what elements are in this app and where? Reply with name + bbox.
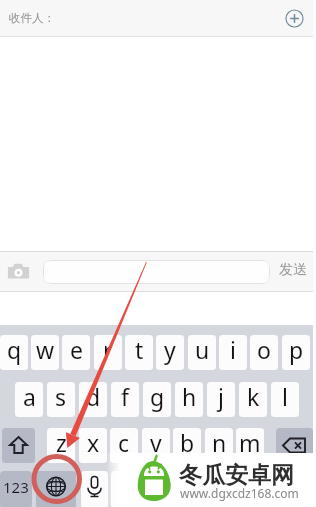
staticText: l <box>282 382 288 412</box>
staticText: s <box>55 382 67 412</box>
staticText: b <box>180 428 195 458</box>
button[interactable]: 123 <box>0 471 32 507</box>
button[interactable]: q <box>0 335 28 370</box>
staticText: d <box>86 382 101 412</box>
button[interactable]: t <box>125 335 153 370</box>
button[interactable]: e <box>62 335 90 370</box>
staticText: z <box>56 428 67 458</box>
staticText: w <box>36 335 55 365</box>
button[interactable]: Switch keyboard <box>36 471 76 507</box>
button[interactable]: 换行 <box>257 471 313 507</box>
button[interactable]: d <box>79 382 107 417</box>
button[interactable]: g <box>143 382 171 417</box>
button[interactable]: n <box>205 428 233 463</box>
button[interactable]: w <box>31 335 59 370</box>
staticText: h <box>182 382 197 412</box>
staticText: g <box>150 382 165 412</box>
staticText: r <box>103 335 113 365</box>
staticText: f <box>121 382 129 412</box>
staticText: a <box>23 382 36 412</box>
staticText: u <box>195 335 210 365</box>
button[interactable]: c <box>110 428 138 463</box>
staticText: y <box>164 335 176 365</box>
button[interactable]: f <box>111 382 139 417</box>
button[interactable]: l <box>271 382 299 417</box>
staticText: p <box>289 335 304 365</box>
button[interactable]: y <box>156 335 184 370</box>
staticText: n <box>212 428 227 458</box>
staticText: q <box>7 335 22 365</box>
staticText: www.dgxcdz168.com <box>180 485 299 501</box>
button[interactable] <box>111 471 253 507</box>
staticText: 收件人： <box>9 11 55 25</box>
staticText: m <box>239 428 261 458</box>
staticText: j <box>218 382 224 412</box>
staticText: c <box>118 428 130 458</box>
staticText: 换行 <box>272 479 298 495</box>
button[interactable]: m <box>236 428 264 463</box>
button[interactable]: s <box>47 382 75 417</box>
button[interactable]: Dictate <box>81 471 108 507</box>
button[interactable]: Shift <box>2 428 35 463</box>
button[interactable] <box>43 260 270 284</box>
button[interactable]: 发送 <box>276 258 310 282</box>
button[interactable]: o <box>250 335 278 370</box>
button[interactable]: i <box>219 335 247 370</box>
button[interactable]: p <box>282 335 310 370</box>
staticText: e <box>70 335 83 365</box>
button[interactable]: h <box>175 382 203 417</box>
staticText: i <box>230 335 236 365</box>
staticText: t <box>135 335 144 365</box>
button[interactable]: a <box>15 382 43 417</box>
button[interactable]: b <box>173 428 201 463</box>
button[interactable]: z <box>47 428 75 463</box>
button[interactable]: Camera <box>7 260 30 283</box>
button[interactable]: u <box>188 335 216 370</box>
button[interactable]: Backspace <box>276 428 313 463</box>
button[interactable]: Add recipient <box>285 9 304 28</box>
staticText: 发送 <box>279 261 307 279</box>
staticText: x <box>87 428 100 458</box>
button[interactable]: x <box>79 428 107 463</box>
button[interactable]: 收件人： <box>0 0 316 36</box>
staticText: v <box>150 428 162 458</box>
button[interactable]: r <box>94 335 122 370</box>
button[interactable]: j <box>207 382 235 417</box>
staticText: o <box>257 335 271 365</box>
staticText: 冬瓜安卓网 <box>179 461 294 490</box>
button[interactable]: k <box>239 382 267 417</box>
staticText: k <box>247 382 260 412</box>
button[interactable]: v <box>142 428 170 463</box>
staticText: 123 <box>3 477 29 497</box>
